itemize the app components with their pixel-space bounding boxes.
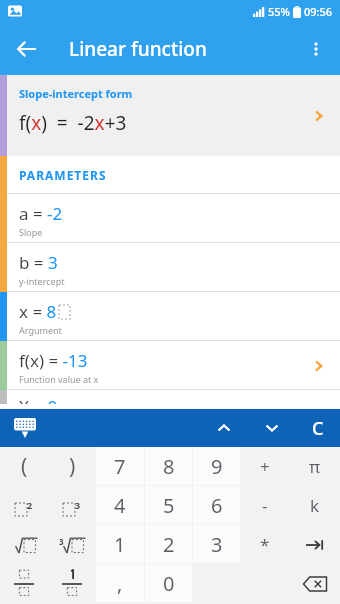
staticText: 55%: [268, 4, 290, 19]
button[interactable]: 3: [193, 525, 240, 563]
button[interactable]: +: [240, 447, 290, 486]
button[interactable]: 7: [96, 447, 144, 485]
staticText: π: [309, 455, 321, 478]
staticText: 4: [114, 492, 126, 519]
button[interactable]: b = 3: [0, 243, 340, 292]
staticText: 3: [211, 531, 223, 558]
button[interactable]: Hide keyboard: [8, 411, 42, 445]
staticText: Linear function: [69, 36, 207, 62]
staticText: 5: [163, 492, 175, 519]
staticText: X = 0: [19, 395, 58, 404]
staticText: Slope: [19, 226, 43, 238]
staticText: -: [262, 494, 268, 517]
button[interactable]: k: [290, 486, 340, 525]
staticText: 6: [211, 492, 223, 519]
staticText: Slope-intercept form: [19, 86, 133, 101]
staticText: Function value at x: [19, 373, 99, 385]
button[interactable]: 2: [145, 525, 192, 563]
button[interactable]: (: [0, 447, 48, 486]
button[interactable]: 3: [48, 486, 96, 525]
button[interactable]: 5: [145, 486, 192, 524]
staticText: ): [69, 452, 76, 481]
button[interactable]: Back: [6, 29, 46, 69]
button[interactable]: 3: [48, 525, 96, 564]
button[interactable]: ,: [96, 564, 144, 602]
staticText: C: [312, 416, 324, 441]
staticText: a = -2: [19, 202, 63, 225]
button[interactable]: Backspace: [290, 564, 340, 603]
other: Backspace: [290, 564, 340, 603]
staticText: 8: [163, 453, 175, 480]
button[interactable]: More options: [296, 29, 336, 69]
button[interactable]: ): [48, 447, 96, 486]
button[interactable]: a = -2: [0, 194, 340, 243]
button[interactable]: [0, 525, 48, 564]
button[interactable]: C: [296, 409, 340, 447]
staticText: 3: [59, 536, 64, 547]
staticText: 7: [114, 453, 126, 480]
staticText: ,: [117, 570, 123, 597]
other: Tab: [290, 525, 340, 564]
button[interactable]: Previous field: [200, 409, 248, 447]
button[interactable]: f(x) = -13: [0, 341, 340, 390]
staticText: k: [310, 494, 320, 517]
button[interactable]: 2: [0, 486, 48, 525]
button[interactable]: 6: [193, 486, 240, 524]
staticText: 0: [163, 570, 175, 597]
staticText: (: [21, 452, 28, 481]
staticText: 09:56: [304, 4, 333, 19]
button[interactable]: [48, 564, 96, 603]
staticText: +: [260, 455, 270, 478]
staticText: f(x) = -2x+3: [19, 110, 127, 136]
button[interactable]: Tab: [290, 525, 340, 564]
staticText: x = 8: [19, 300, 57, 323]
staticText: 9: [211, 453, 223, 480]
button[interactable]: [0, 564, 48, 603]
button[interactable]: 9: [193, 447, 240, 485]
staticText: Argument: [19, 324, 62, 336]
button[interactable]: Slope-intercept form: [0, 75, 340, 156]
staticText: *: [260, 533, 270, 556]
button[interactable]: *: [240, 525, 290, 564]
staticText: 2: [163, 531, 175, 558]
staticText: y-intercept: [19, 275, 65, 287]
button[interactable]: x = 8: [0, 292, 340, 341]
button[interactable]: -: [240, 486, 290, 525]
staticText: f(x) = -13: [19, 349, 88, 372]
staticText: 2: [27, 499, 33, 511]
staticText: 3: [75, 499, 81, 511]
button[interactable]: 8: [145, 447, 192, 485]
button[interactable]: π: [290, 447, 340, 486]
staticText: 1: [114, 531, 126, 558]
button[interactable]: 1: [96, 525, 144, 563]
staticText: b = 3: [19, 251, 58, 274]
button[interactable]: 0: [145, 564, 192, 602]
button[interactable]: Next field: [248, 409, 296, 447]
staticText: PARAMETERS: [19, 167, 107, 183]
button[interactable]: 4: [96, 486, 144, 524]
